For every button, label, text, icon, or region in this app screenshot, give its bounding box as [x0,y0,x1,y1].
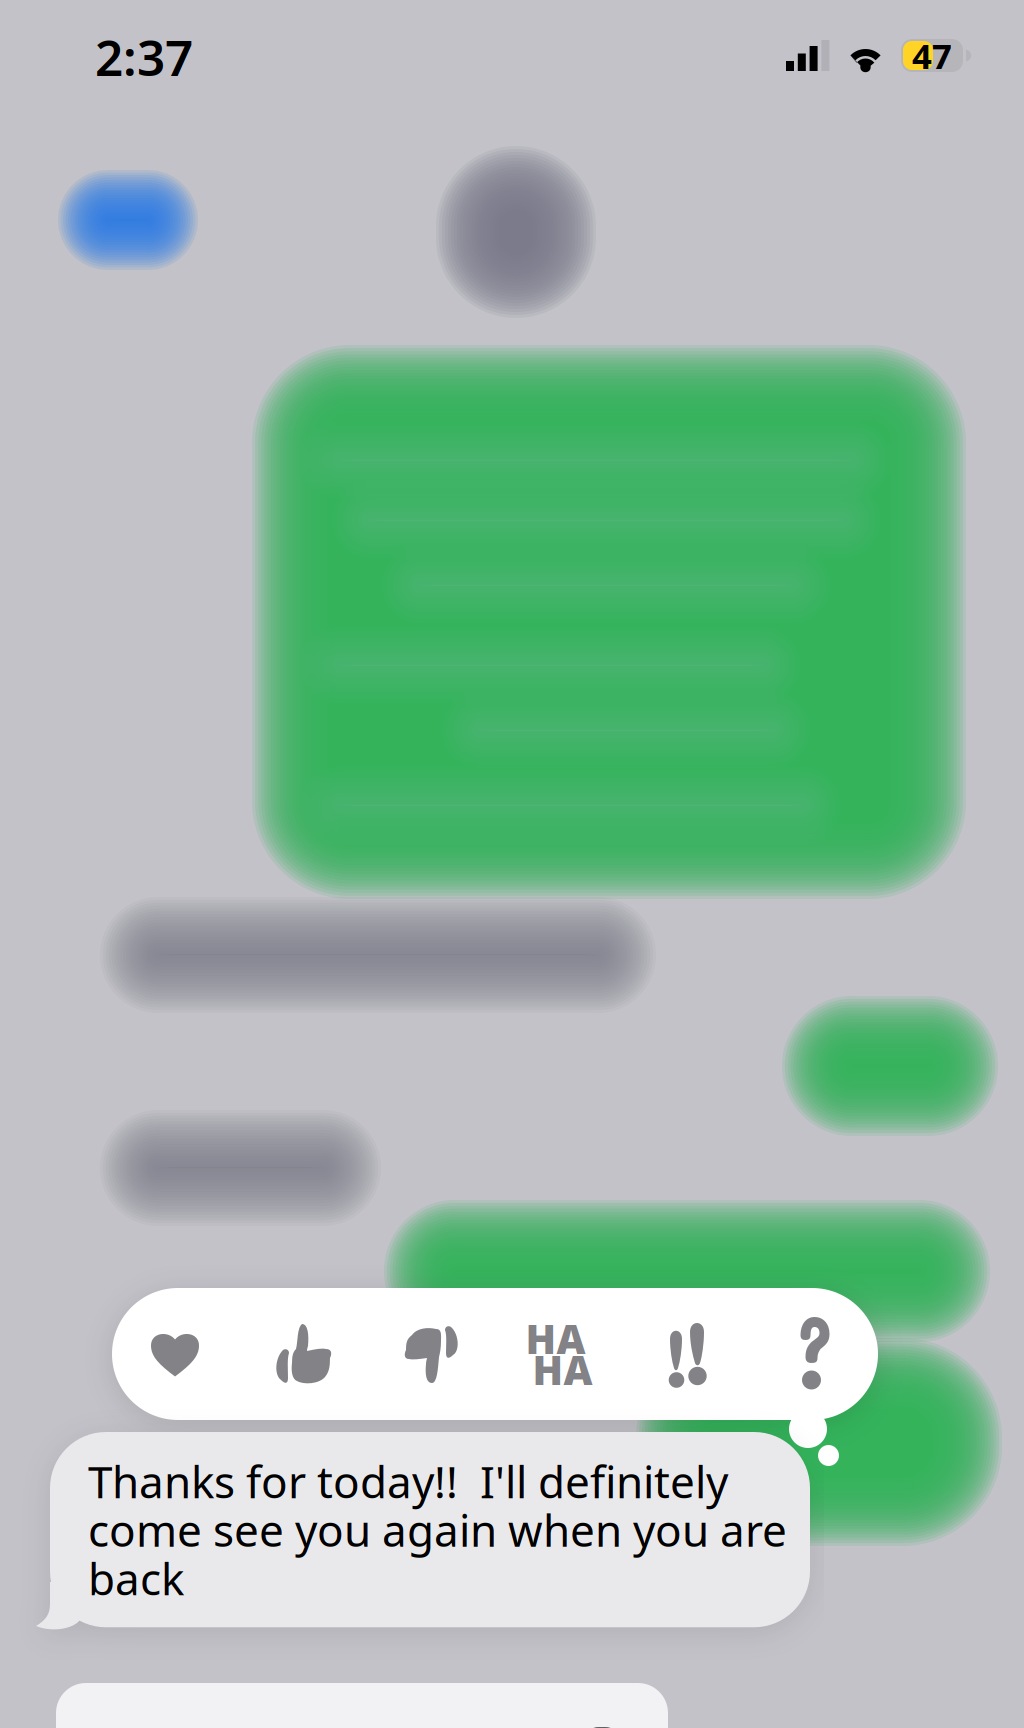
staticText: 47 [912,32,952,78]
button[interactable]: Add Sticker [56,1683,668,1728]
button[interactable]: Thumbs up [239,1288,367,1420]
staticText: 2:37 [95,24,193,89]
button[interactable]: Haha [495,1288,623,1420]
staticText: back [88,1549,184,1607]
button[interactable]: Exclamation [623,1288,751,1420]
button[interactable]: Question mark [751,1288,879,1420]
button[interactable]: Thumbs down [367,1288,495,1420]
staticText: come see you again when you are [88,1500,787,1559]
staticText: HA [525,1312,585,1365]
button[interactable]: Love [111,1288,239,1420]
staticText: Thanks for today!! I'll definitely [88,1452,728,1510]
staticText: HA [532,1343,592,1396]
